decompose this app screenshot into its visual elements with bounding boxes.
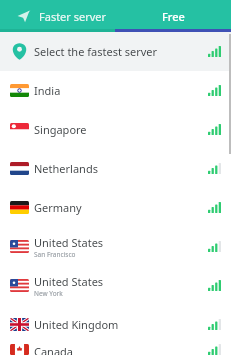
staticText: United States	[34, 235, 104, 250]
other: Signal strength	[208, 344, 221, 355]
staticText: San Francisco	[34, 250, 76, 259]
button[interactable]: United States	[0, 227, 231, 266]
other: Signal strength	[208, 280, 221, 291]
staticText: United Kingdom	[34, 317, 119, 332]
button[interactable]: United States	[0, 266, 231, 305]
staticText: Netherlands	[34, 161, 98, 176]
staticText: Faster server	[39, 9, 107, 24]
button[interactable]: Germany	[0, 188, 231, 227]
other: Signal strength	[208, 319, 221, 330]
button[interactable]: United Kingdom	[0, 305, 231, 344]
staticText: Select the fastest server	[34, 44, 158, 59]
staticText: United States	[34, 274, 104, 289]
button[interactable]: Free	[115, 0, 231, 32]
button[interactable]: Canada	[0, 344, 231, 355]
button[interactable]: Singapore	[0, 110, 231, 149]
button[interactable]: Faster server	[0, 0, 115, 32]
staticText: India	[34, 83, 61, 98]
button[interactable]: India	[0, 71, 231, 110]
other: Signal strength	[208, 241, 221, 252]
staticText: Free	[162, 9, 185, 24]
staticText: New York	[34, 289, 63, 298]
other: Faster server	[17, 10, 30, 23]
other: Signal strength	[208, 124, 221, 135]
other: Signal strength	[208, 202, 221, 213]
staticText: Singapore	[34, 122, 87, 137]
staticText: Canada	[34, 344, 74, 355]
other: Signal strength	[208, 46, 221, 57]
other: Signal strength	[208, 85, 221, 96]
button[interactable]: Netherlands	[0, 149, 231, 188]
staticText: Germany	[34, 200, 82, 215]
other: Signal strength	[208, 163, 221, 174]
button[interactable]: Select the fastest server	[0, 32, 231, 71]
